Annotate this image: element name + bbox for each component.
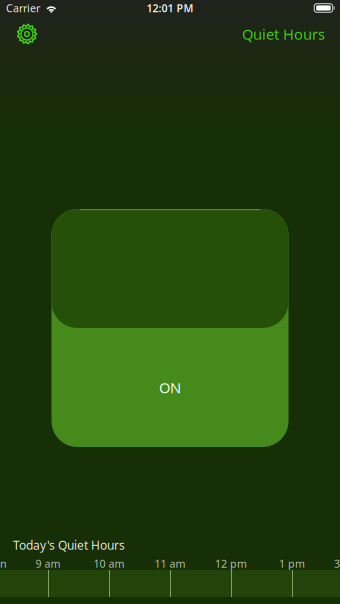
- staticText: 1 pm: [279, 556, 305, 571]
- button[interactable]: Settings: [5, 16, 49, 52]
- staticText: 12 pm: [215, 556, 247, 571]
- staticText: Quiet Hours: [242, 24, 325, 44]
- staticText: Today's Quiet Hours: [13, 537, 125, 553]
- staticText: n: [0, 556, 7, 571]
- staticText: ON: [159, 378, 181, 397]
- staticText: 11 am: [154, 556, 185, 571]
- staticText: 3: [334, 556, 340, 571]
- staticText: 10 am: [93, 556, 124, 571]
- button[interactable]: Quiet Hours: [234, 16, 333, 52]
- staticText: 12:01 PM: [146, 1, 193, 15]
- staticText: Carrier: [6, 1, 40, 15]
- staticText: 9 am: [35, 556, 60, 571]
